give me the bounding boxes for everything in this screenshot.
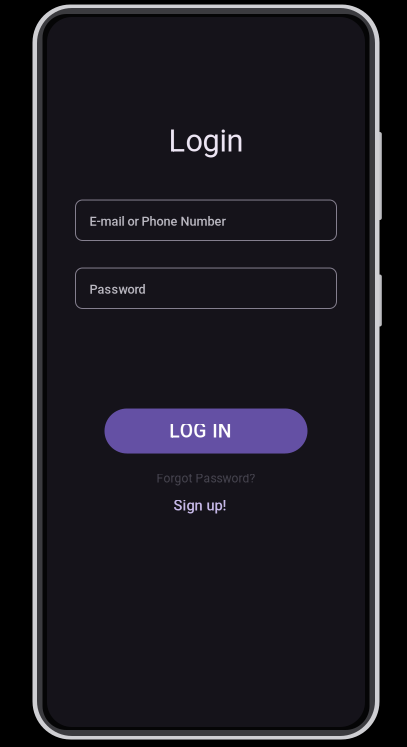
button[interactable]: E-mail or Phone Number [75,200,336,240]
staticText: Login [168,123,243,159]
button[interactable]: Sign up! [179,496,232,514]
staticText: E-mail or Phone Number [89,214,225,229]
staticText: Password [89,282,145,297]
staticText: Sign up! [173,497,226,514]
staticText: Forgot Password? [156,471,255,486]
button[interactable]: Password [75,268,336,308]
button[interactable]: LOG IN [104,408,307,453]
staticText: LOG IN [169,420,232,442]
button[interactable]: Forgot Password? [156,470,255,486]
